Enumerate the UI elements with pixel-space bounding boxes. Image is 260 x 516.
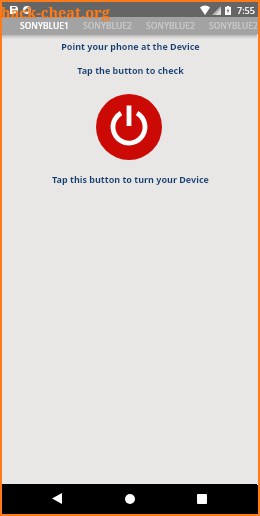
staticText: Point your phone at the Device bbox=[61, 40, 200, 52]
staticText: SONYBLUE2 bbox=[146, 20, 195, 32]
button[interactable]: Power bbox=[96, 94, 162, 160]
button[interactable]: SONYBLUE2 bbox=[202, 17, 260, 35]
button[interactable]: SONYBLUE2 bbox=[76, 17, 139, 35]
button[interactable]: SONYBLUE2 bbox=[139, 17, 202, 35]
staticText: Tap the button to check bbox=[77, 64, 184, 76]
staticText: hack-cheat.org bbox=[1, 2, 110, 22]
staticText: SONYBLUE1 bbox=[20, 20, 69, 32]
button[interactable]: Recent apps bbox=[185, 484, 219, 513]
staticText: SONYBLUE2 bbox=[83, 20, 132, 32]
staticText: 7:55 bbox=[237, 4, 255, 16]
staticText: SONYBLUE2 bbox=[209, 20, 258, 32]
button[interactable]: Back bbox=[40, 484, 74, 513]
button[interactable]: Home bbox=[113, 484, 147, 513]
staticText: Tap this button to turn your Device bbox=[52, 173, 209, 185]
button[interactable]: SONYBLUE1 bbox=[13, 17, 76, 35]
